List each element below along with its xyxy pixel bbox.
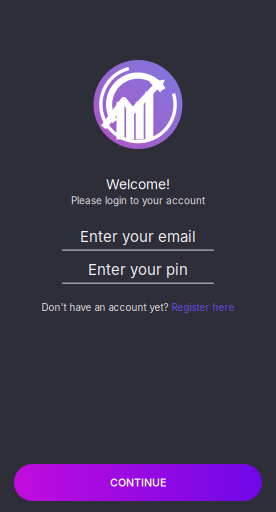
staticText: Please login to your account — [71, 195, 205, 206]
staticText: Enter your pin — [88, 261, 188, 279]
button[interactable]: CONTINUE — [14, 464, 262, 501]
staticText: Enter your email — [80, 228, 196, 246]
staticText: Don't have an account yet? — [41, 302, 168, 313]
button[interactable]: Register here — [171, 302, 234, 313]
button[interactable]: Enter your email — [62, 228, 214, 251]
button[interactable]: Enter your pin — [62, 261, 214, 284]
staticText: CONTINUE — [110, 476, 166, 489]
staticText: Register here — [171, 302, 234, 313]
staticText: Welcome! — [106, 176, 170, 193]
